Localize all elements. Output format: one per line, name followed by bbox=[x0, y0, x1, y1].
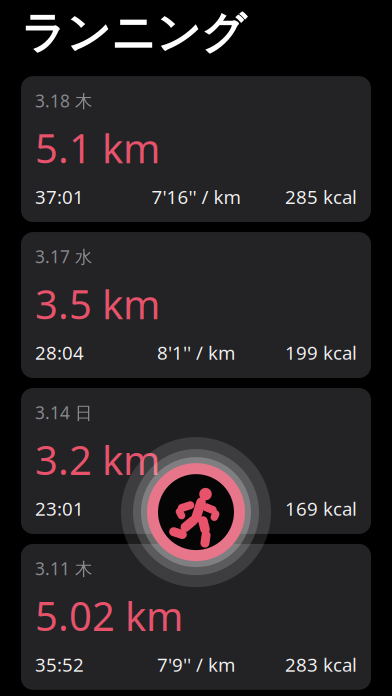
button[interactable]: 3.18 木 bbox=[21, 76, 371, 222]
staticText: 7'9'' / km bbox=[157, 652, 235, 677]
staticText: 283 kcal bbox=[285, 652, 357, 677]
staticText: 37:01 bbox=[35, 184, 84, 209]
staticText: 5.1 km bbox=[35, 121, 160, 174]
staticText: 285 kcal bbox=[285, 184, 357, 209]
staticText: 199 kcal bbox=[285, 340, 357, 365]
staticText: 7'16'' / km bbox=[151, 184, 240, 209]
staticText: 23:01 bbox=[35, 496, 84, 521]
button[interactable]: Start run bbox=[121, 437, 271, 587]
staticText: 35:52 bbox=[35, 652, 84, 677]
staticText: ランニング bbox=[21, 6, 246, 60]
staticText: 28:04 bbox=[35, 340, 84, 365]
staticText: 3.14 日 bbox=[35, 401, 92, 424]
staticText: 3.5 km bbox=[35, 277, 160, 330]
staticText: 3.17 水 bbox=[35, 245, 92, 268]
button[interactable]: 3.17 水 bbox=[21, 232, 371, 378]
staticText: 5.02 km bbox=[35, 589, 183, 642]
staticText: 3.18 木 bbox=[35, 89, 92, 112]
staticText: 169 kcal bbox=[285, 496, 357, 521]
button[interactable]: 3.11 木 bbox=[21, 544, 371, 690]
button[interactable]: 3.14 日 bbox=[21, 388, 371, 534]
staticText: 7'12'' / km bbox=[151, 496, 240, 521]
staticText: 3.11 木 bbox=[35, 557, 92, 580]
staticText: 3.2 km bbox=[35, 433, 160, 486]
staticText: 8'1'' / km bbox=[157, 340, 235, 365]
